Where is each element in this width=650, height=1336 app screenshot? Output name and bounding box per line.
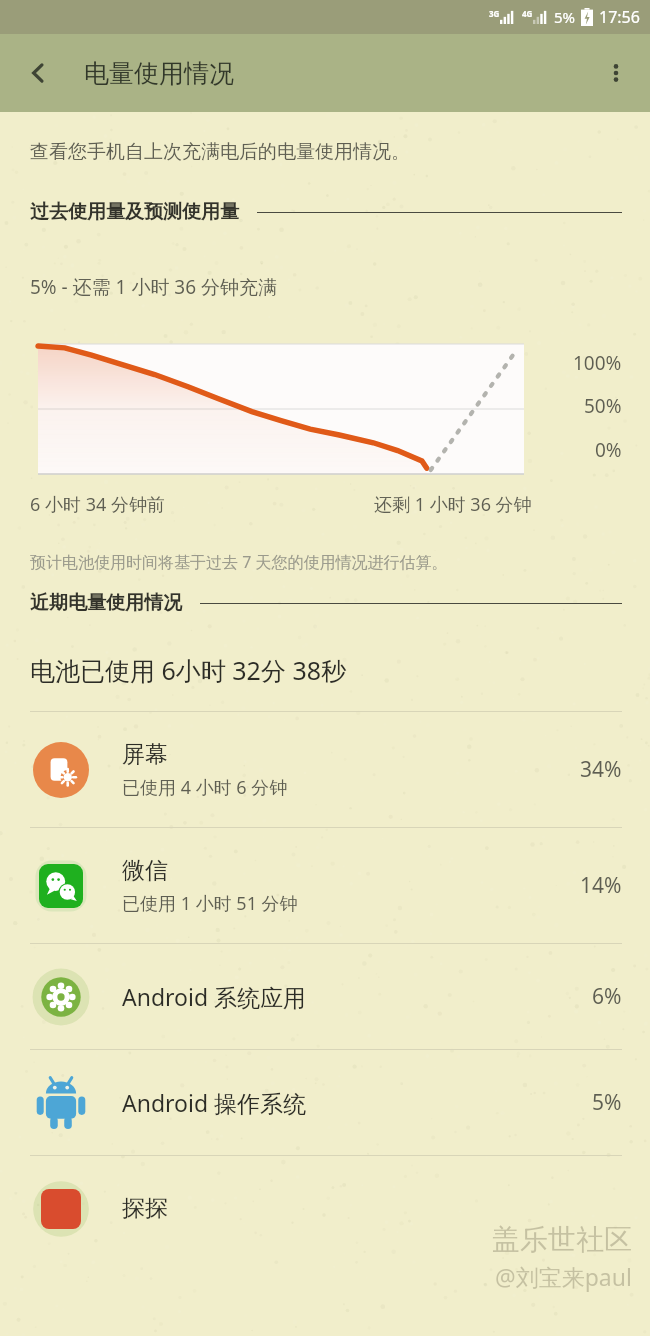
staticText: 探探 bbox=[122, 1194, 168, 1223]
button[interactable]: 屏幕 bbox=[0, 712, 650, 827]
staticText: 查看您手机自上次充满电后的电量使用情况。 bbox=[30, 140, 410, 164]
staticText: 电池已使用 6小时 32分 38秒 bbox=[30, 653, 347, 687]
staticText: 3G bbox=[489, 8, 500, 19]
staticText: 过去使用量及预测使用量 bbox=[30, 200, 239, 224]
staticText: 4G bbox=[522, 8, 533, 19]
staticText: 已使用 1 小时 51 分钟 bbox=[122, 891, 298, 916]
staticText: 6 小时 34 分钟前 bbox=[30, 492, 165, 517]
staticText: 微信 bbox=[122, 856, 168, 885]
button[interactable]: Android 操作系统 bbox=[0, 1050, 650, 1155]
staticText: Android 系统应用 bbox=[122, 981, 307, 1012]
staticText: 14% bbox=[580, 871, 622, 900]
button[interactable]: Android 系统应用 bbox=[0, 944, 650, 1049]
staticText: 17:56 bbox=[599, 6, 640, 28]
staticText: 5% - 还需 1 小时 36 分钟充满 bbox=[30, 274, 278, 300]
button[interactable]: More options bbox=[590, 47, 642, 99]
staticText: 盖乐世社区 bbox=[492, 1222, 632, 1257]
staticText: Android 操作系统 bbox=[122, 1087, 307, 1118]
staticText: 预计电池使用时间将基于过去 7 天您的使用情况进行估算。 bbox=[30, 551, 448, 573]
staticText: 屏幕 bbox=[122, 740, 168, 769]
staticText: 电量使用情况 bbox=[84, 58, 234, 89]
staticText: 5% bbox=[592, 1088, 622, 1117]
button[interactable]: 探探 bbox=[0, 1156, 650, 1261]
button[interactable]: Back bbox=[12, 47, 64, 99]
staticText: 5% bbox=[554, 7, 576, 27]
staticText: 100% bbox=[573, 350, 622, 376]
staticText: 34% bbox=[580, 755, 622, 784]
staticText: 6% bbox=[592, 982, 622, 1011]
staticText: 50% bbox=[584, 393, 622, 419]
staticText: 还剩 1 小时 36 分钟 bbox=[374, 492, 532, 517]
staticText: 近期电量使用情况 bbox=[30, 591, 182, 615]
staticText: @刘宝来paul bbox=[495, 1261, 632, 1292]
staticText: 0% bbox=[595, 437, 622, 463]
staticText: 已使用 4 小时 6 分钟 bbox=[122, 775, 288, 800]
button[interactable]: 微信 bbox=[0, 828, 650, 943]
